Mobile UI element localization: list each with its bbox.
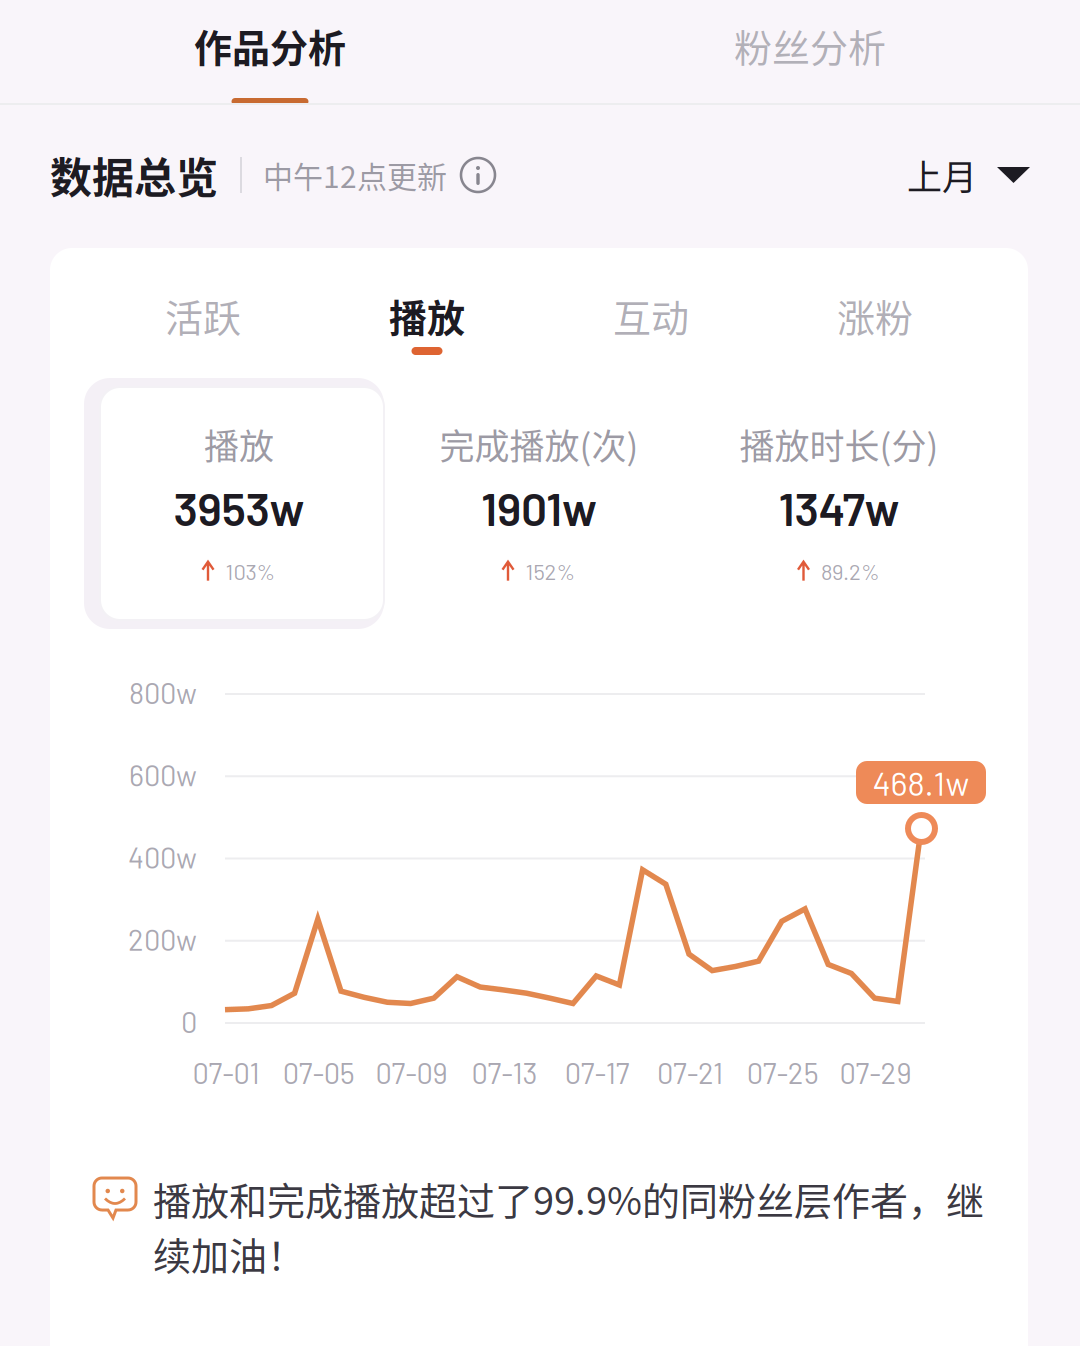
staticText: 103% [225,558,275,584]
staticText: 播放时长(分) [739,419,938,470]
staticText: 涨粉 [837,288,913,343]
button[interactable]: 涨粉 [763,281,987,377]
staticText: 200w [128,922,197,957]
staticText: 中午12点更新 [263,153,447,197]
staticText: 07-25 [747,1055,819,1090]
button[interactable]: 完成播放(次) [389,396,689,629]
staticText: 400w [128,839,197,874]
staticText: 07-13 [471,1055,537,1090]
staticText: 07-09 [376,1055,448,1090]
staticText: 89.2% [821,558,880,584]
button[interactable]: 上月 [907,140,1030,210]
staticText: 152% [525,558,575,584]
staticText: 上月 [907,150,977,200]
button[interactable]: 作品分析 [0,0,540,104]
staticText: 07-05 [283,1055,355,1090]
staticText: 800w [129,675,197,710]
staticText: 播放 [389,288,465,343]
staticText: 468.1w [872,763,969,802]
staticText: 1901w [481,480,597,535]
staticText: 1347w [778,480,899,535]
button[interactable]: 播放 [315,281,539,377]
staticText: 0 [181,1004,197,1039]
staticText: 07-21 [657,1055,723,1090]
staticText: 07-17 [565,1055,630,1090]
button[interactable]: 数据说明 [458,155,498,195]
staticText: 活跃 [165,288,241,343]
staticText: 播放 [204,419,274,470]
button[interactable]: 播放时长(分) [689,396,989,629]
staticText: 互动 [613,288,689,343]
staticText: 作品分析 [194,18,346,73]
staticText: 数据总览 [50,145,218,205]
staticText: 600w [129,757,197,792]
button[interactable]: 活跃 [91,281,315,377]
staticText: 07-01 [192,1055,259,1090]
button[interactable]: 播放 [89,396,389,629]
staticText: 07-29 [840,1055,912,1090]
button[interactable]: 粉丝分析 [540,0,1080,104]
staticText: 完成播放(次) [439,419,638,470]
staticText: 粉丝分析 [734,18,886,73]
staticText: 播放和完成播放超过了99.9%的同粉丝层作者，继续加油！ [153,1171,984,1281]
staticText: 3953w [173,480,304,535]
button[interactable]: 互动 [539,281,763,377]
